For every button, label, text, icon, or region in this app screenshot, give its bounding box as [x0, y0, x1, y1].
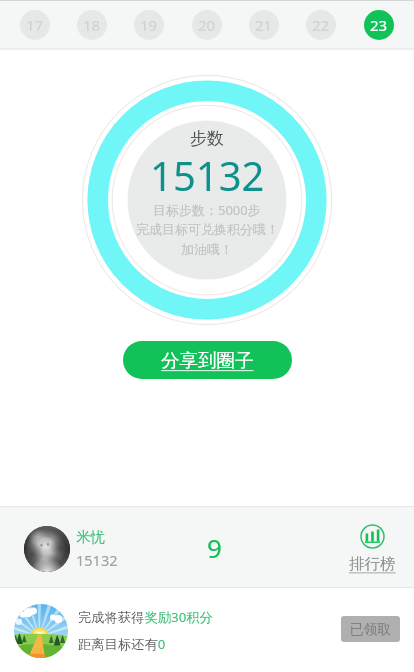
button[interactable]: 20	[192, 10, 222, 40]
staticText: 距离目标还有0	[78, 635, 166, 653]
staticText: 9	[207, 530, 222, 565]
staticText: 分享到圈子	[161, 349, 254, 372]
button[interactable]: 完成将获得奖励30积分	[0, 589, 414, 672]
button[interactable]: 分享到圈子	[123, 341, 292, 379]
button[interactable]: 17	[20, 10, 50, 40]
staticText: 15132	[76, 550, 118, 570]
staticText: 已领取	[350, 621, 392, 638]
staticText: 加油哦！	[181, 241, 233, 257]
button[interactable]: 22	[306, 10, 336, 40]
staticText: 完成将获得奖励30积分	[78, 608, 213, 626]
staticText: 19	[140, 15, 158, 35]
button[interactable]: 23	[364, 10, 394, 40]
button[interactable]: 18	[77, 10, 107, 40]
button[interactable]: 已领取	[341, 616, 400, 642]
staticText: 排行榜	[349, 554, 396, 574]
staticText: 17	[26, 15, 44, 35]
staticText: 18	[83, 15, 101, 35]
staticText: 23	[370, 15, 388, 35]
staticText: 米忧	[76, 528, 105, 546]
staticText: 15132	[150, 148, 265, 202]
staticText: 完成目标可兑换积分哦！	[136, 221, 279, 237]
staticText: 步数	[190, 128, 224, 149]
button[interactable]: 19	[134, 10, 164, 40]
staticText: 21	[255, 15, 273, 35]
button[interactable]: 米忧	[0, 506, 414, 588]
staticText: 20	[198, 15, 216, 35]
button[interactable]: 排行榜	[332, 524, 412, 574]
staticText: 目标步数：5000步	[153, 201, 261, 219]
button[interactable]: 21	[249, 10, 279, 40]
staticText: 22	[312, 15, 330, 35]
